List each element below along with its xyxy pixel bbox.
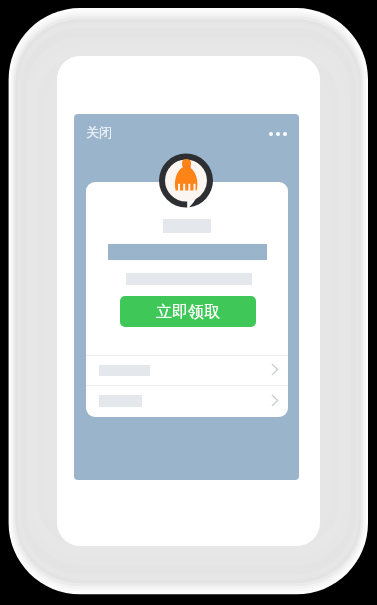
- button[interactable]: Detail row 2: [86, 386, 288, 415]
- staticText: 立即领取: [156, 302, 220, 322]
- button[interactable]: 立即领取: [120, 296, 256, 327]
- button[interactable]: More options: [269, 132, 287, 136]
- button[interactable]: 关闭: [86, 124, 112, 140]
- button[interactable]: Detail row 1: [86, 356, 288, 385]
